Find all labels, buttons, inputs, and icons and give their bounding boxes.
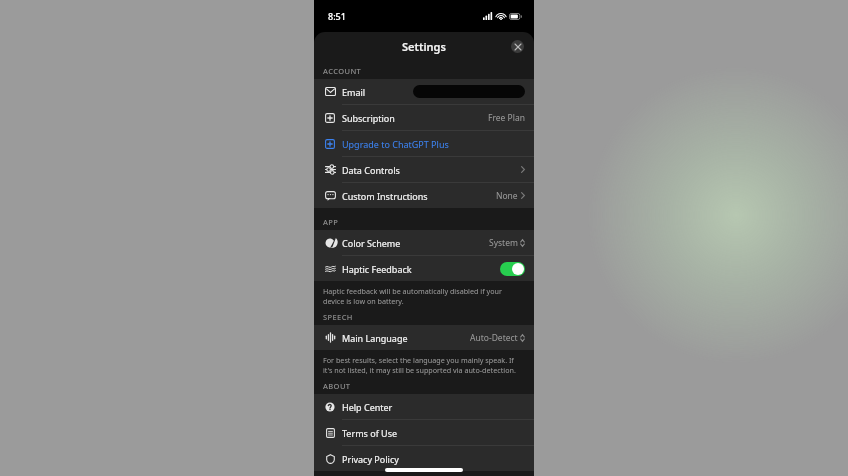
button[interactable]: Data Controls [314, 157, 534, 182]
staticText: Main Language [342, 332, 408, 344]
button[interactable]: Custom Instructions [314, 183, 534, 208]
button[interactable]: Help Center [314, 394, 534, 419]
staticText: Color Scheme [342, 237, 401, 249]
staticText: Data Controls [342, 164, 400, 176]
button[interactable]: Subscription [314, 105, 534, 130]
button[interactable]: Email [314, 79, 534, 104]
button[interactable]: Close [511, 40, 524, 53]
staticText: Haptic feedback will be automatically di… [323, 286, 520, 306]
staticText: Custom Instructions [342, 190, 428, 202]
staticText: Help Center [342, 401, 393, 413]
staticText: Free Plan [488, 112, 525, 124]
button[interactable]: Haptic Feedback [314, 256, 534, 281]
button[interactable]: Privacy Policy [314, 446, 534, 471]
staticText: APP [323, 217, 339, 227]
staticText: ACCOUNT [323, 66, 362, 76]
staticText: For best results, select the language yo… [323, 355, 520, 375]
staticText: SPEECH [323, 312, 353, 322]
staticText: None [496, 190, 518, 202]
staticText: Subscription [342, 112, 395, 124]
staticText: Privacy Policy [342, 453, 399, 465]
button[interactable]: Main Language [314, 325, 534, 350]
staticText: System [489, 237, 518, 249]
button[interactable]: Haptic Feedback [500, 262, 525, 276]
staticText: Email [342, 86, 366, 98]
button[interactable]: Terms of Use [314, 420, 534, 445]
staticText: 8:51 [328, 10, 346, 22]
staticText: Auto-Detect [470, 332, 518, 344]
staticText: Terms of Use [342, 427, 398, 439]
button[interactable]: Upgrade to ChatGPT Plus [314, 131, 534, 156]
staticText: Upgrade to ChatGPT Plus [342, 138, 449, 150]
staticText: ABOUT [323, 381, 351, 391]
button[interactable]: Color Scheme [314, 230, 534, 255]
staticText: Settings [402, 39, 446, 54]
staticText: Haptic Feedback [342, 263, 412, 275]
